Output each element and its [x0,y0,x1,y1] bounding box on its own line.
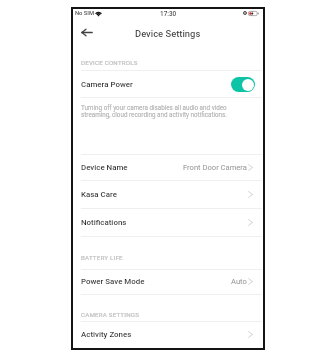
staticText: Camera Power [81,80,133,89]
staticText: CAMERA SETTINGS [81,311,140,318]
staticText: 17:30 [160,10,177,18]
button[interactable]: Activity Zones [81,321,262,348]
staticText: Device Name [81,163,128,172]
staticText: Kasa Care [81,190,117,199]
button[interactable]: Power Save Mode [81,269,262,294]
button[interactable]: Notifications [81,208,262,236]
staticText: Front Door Camera [183,163,247,172]
staticText: Auto [231,277,247,286]
staticText: Notifications [81,218,127,227]
button[interactable]: Back [77,22,97,42]
staticText: Turning off your camera disables all aud… [81,104,231,118]
staticText: Device Settings [135,28,201,39]
staticText: No SIM [75,10,95,17]
staticText: BATTERY LIFE [81,254,123,261]
staticText: DEVICE CONTROLS [81,59,138,66]
staticText: Activity Zones [81,330,132,339]
button[interactable]: Camera Power [81,70,262,98]
button[interactable]: Device Name [81,154,262,181]
staticText: Power Save Mode [81,277,145,286]
button[interactable]: Kasa Care [81,180,262,208]
